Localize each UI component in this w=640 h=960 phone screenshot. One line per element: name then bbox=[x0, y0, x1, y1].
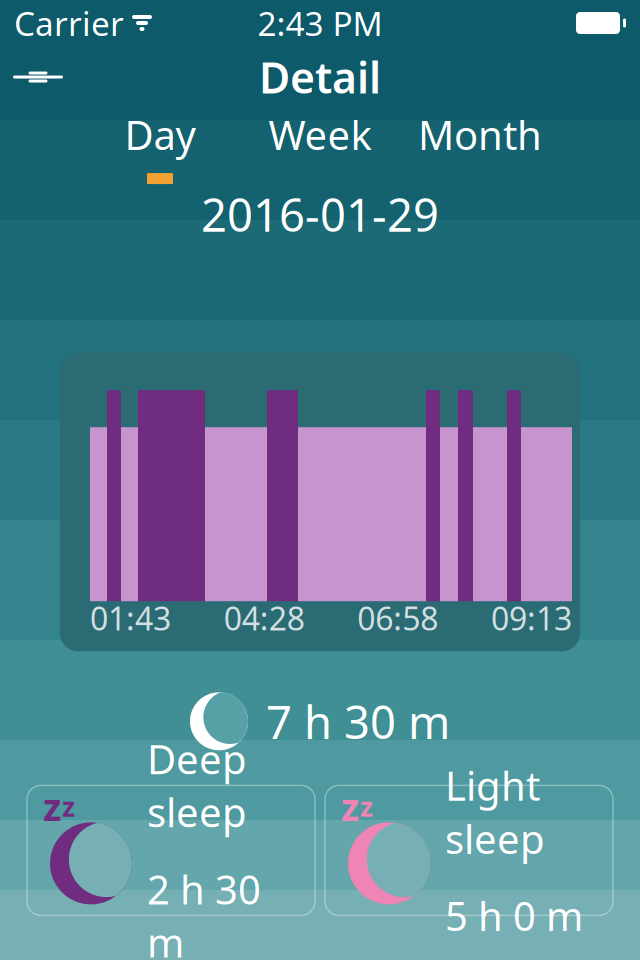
staticText: 09:13 bbox=[491, 597, 572, 639]
staticText: z bbox=[360, 789, 373, 824]
staticText: Detail bbox=[259, 49, 381, 105]
staticText: Day bbox=[124, 108, 195, 161]
staticText: Light sleep bbox=[445, 759, 545, 865]
staticText: 2:43 PM bbox=[257, 1, 382, 45]
button[interactable]: z bbox=[325, 785, 613, 915]
button[interactable]: Day bbox=[80, 108, 240, 184]
staticText: z bbox=[341, 782, 359, 831]
staticText: Week bbox=[268, 108, 371, 161]
staticText: 04:28 bbox=[224, 597, 305, 639]
staticText: z bbox=[43, 782, 61, 831]
staticText: z bbox=[62, 789, 75, 824]
staticText: 2 h 30 m bbox=[147, 862, 261, 960]
staticText: 06:58 bbox=[357, 597, 438, 639]
button[interactable]: Back bbox=[0, 48, 76, 106]
staticText: 01:43 bbox=[90, 597, 171, 639]
staticText: 5 h 0 m bbox=[445, 889, 583, 942]
staticText: 2016-01-29 bbox=[201, 184, 439, 244]
button[interactable]: z bbox=[27, 785, 315, 915]
button[interactable]: Month bbox=[400, 108, 560, 184]
staticText: Carrier bbox=[14, 1, 124, 45]
button[interactable]: Week bbox=[240, 108, 400, 184]
staticText: 7 h 30 m bbox=[266, 691, 450, 751]
staticText: Deep sleep bbox=[147, 732, 247, 838]
staticText: Month bbox=[418, 108, 542, 161]
